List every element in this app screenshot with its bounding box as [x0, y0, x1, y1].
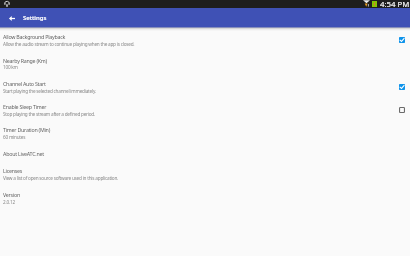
staticText: Nearby Range (Km)	[3, 57, 383, 64]
button[interactable]	[0, 123, 410, 146]
button[interactable]	[0, 100, 410, 123]
staticText: Allow Background Playback	[3, 33, 383, 40]
button[interactable]	[0, 188, 410, 211]
staticText: 100 km	[3, 64, 383, 70]
staticText: Allow the audio stream to continue playi…	[3, 41, 383, 47]
staticText: Version	[3, 191, 383, 198]
button[interactable]: Back	[5, 12, 18, 25]
button[interactable]	[0, 77, 410, 100]
staticText: 2.0.12	[3, 199, 383, 205]
button[interactable]	[0, 147, 410, 164]
staticText: Settings	[23, 14, 47, 22]
staticText: 4:54 PM	[380, 0, 410, 7]
button[interactable]: Channel Auto Start	[393, 79, 410, 94]
staticText: Channel Auto Start	[3, 80, 383, 87]
button[interactable]	[0, 54, 410, 77]
staticText: Stop playing the stream after a defined …	[3, 111, 383, 117]
staticText: Start playing the selected channel immed…	[3, 88, 383, 94]
staticText: About LiveATC.net	[3, 150, 383, 157]
staticText: Timer Duration (Min)	[3, 126, 383, 133]
staticText: View a list of open source software used…	[3, 175, 383, 181]
staticText: Enable Sleep Timer	[3, 103, 383, 110]
button[interactable]	[0, 164, 410, 187]
button[interactable]: Allow Background Playback	[393, 32, 410, 47]
staticText: 60 minutes	[3, 134, 383, 140]
button[interactable]	[0, 30, 410, 53]
staticText: Licenses	[3, 167, 383, 174]
button[interactable]: Enable Sleep Timer	[393, 103, 410, 118]
